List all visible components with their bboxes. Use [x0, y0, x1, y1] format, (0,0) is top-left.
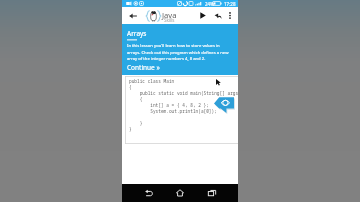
button[interactable]: Run — [196, 7, 210, 24]
staticText: { — [129, 96, 143, 102]
staticText: public static void main(String[] args) — [129, 90, 238, 96]
button[interactable]: Recent apps — [204, 184, 220, 202]
button[interactable]: Preview output — [214, 97, 234, 113]
button[interactable]: Home — [172, 184, 188, 202]
button[interactable]: Java — [145, 7, 201, 24]
staticText: 17:28 — [224, 1, 236, 7]
staticText: 24% — [205, 1, 214, 7]
staticText: int[] a = { 4, 8, 2 }; — [129, 102, 209, 108]
staticText: In this lesson you'll learn how to store… — [127, 43, 232, 61]
staticText: } — [129, 120, 143, 126]
button[interactable]: Back — [126, 7, 140, 24]
staticText: System.out.println(a[0]); — [129, 108, 217, 114]
staticText: Java — [162, 10, 177, 20]
button[interactable]: More options — [223, 7, 236, 24]
button[interactable]: Undo — [211, 7, 225, 24]
button[interactable]: Continue » — [127, 63, 160, 72]
staticText: Skills — [164, 17, 175, 23]
button[interactable]: Back — [141, 184, 157, 202]
staticText: Arrays — [127, 29, 147, 38]
staticText: } — [129, 126, 132, 132]
staticText: { — [129, 84, 132, 90]
staticText: public class Main — [129, 78, 175, 84]
